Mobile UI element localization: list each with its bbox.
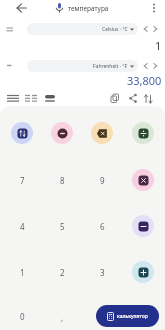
button[interactable]: 2 <box>42 260 82 284</box>
button[interactable]: 3 <box>82 260 122 284</box>
button[interactable]: Celsius · °C <box>27 23 138 35</box>
button[interactable] <box>132 122 154 144</box>
button[interactable] <box>132 261 154 283</box>
button[interactable] <box>151 25 159 33</box>
button[interactable] <box>132 169 154 191</box>
button[interactable] <box>6 93 20 103</box>
staticText: Fahrenheit · °F <box>93 63 128 70</box>
staticText: 9 <box>100 175 105 186</box>
staticText: 4 <box>20 221 25 232</box>
staticText: 5 <box>60 221 65 232</box>
staticText: 7 <box>20 175 25 186</box>
button[interactable] <box>44 93 56 104</box>
staticText: 1 <box>20 267 25 278</box>
staticText: , <box>61 312 64 323</box>
staticText: 0 <box>20 311 25 322</box>
button[interactable]: 9 <box>82 168 122 192</box>
button[interactable]: 8 <box>42 168 82 192</box>
button[interactable] <box>151 62 159 70</box>
button[interactable] <box>24 93 38 103</box>
button[interactable] <box>91 122 113 144</box>
staticText: калькулятор <box>117 313 148 320</box>
staticText: 6 <box>100 221 105 232</box>
staticText: 33,800 <box>127 73 162 88</box>
button[interactable] <box>142 25 150 33</box>
button[interactable] <box>128 93 138 103</box>
staticText: Celsius · °C <box>102 26 128 33</box>
button[interactable]: 5 <box>42 214 82 238</box>
button[interactable] <box>149 1 159 15</box>
button[interactable] <box>51 122 73 144</box>
button[interactable]: 7 <box>2 168 42 192</box>
button[interactable]: 4 <box>2 214 42 238</box>
button[interactable]: 1 <box>2 260 42 284</box>
button[interactable]: 6 <box>82 214 122 238</box>
staticText: 1 <box>155 38 162 53</box>
button[interactable]: , <box>42 305 82 329</box>
button[interactable] <box>11 122 33 144</box>
staticText: 3 <box>100 267 105 278</box>
staticText: 8 <box>60 175 65 186</box>
button[interactable]: 0 <box>2 304 42 328</box>
button[interactable] <box>142 93 154 105</box>
staticText: 2 <box>60 267 65 278</box>
button[interactable] <box>132 215 154 237</box>
button[interactable]: Fahrenheit · °F <box>27 60 138 72</box>
button[interactable]: калькулятор <box>96 305 159 327</box>
staticText: температура <box>68 4 109 13</box>
button[interactable] <box>142 62 150 70</box>
button[interactable] <box>110 93 120 103</box>
button[interactable] <box>14 1 30 17</box>
button[interactable] <box>54 2 65 13</box>
